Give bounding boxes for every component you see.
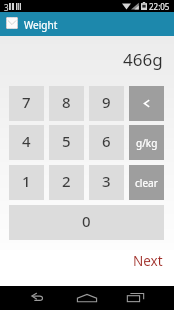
staticText: 8 xyxy=(62,92,71,112)
button[interactable]: Next xyxy=(133,247,174,275)
staticText: Next xyxy=(133,252,163,270)
button[interactable]: 3 xyxy=(89,165,124,200)
staticText: g/kg xyxy=(136,136,158,150)
button[interactable]: 9 xyxy=(89,86,124,121)
staticText: Weight xyxy=(24,18,58,32)
staticText: 3 xyxy=(4,2,9,13)
staticText: 6 xyxy=(102,131,111,151)
button[interactable]: 2 xyxy=(49,165,84,200)
button[interactable]: 4 xyxy=(9,125,44,160)
button[interactable]: g/kg xyxy=(129,125,164,160)
staticText: clear xyxy=(135,176,158,190)
staticText: 4 xyxy=(22,131,31,151)
button[interactable]: Back xyxy=(21,286,53,310)
staticText: 1 xyxy=(22,171,31,191)
button[interactable]: 1 xyxy=(9,165,44,200)
button[interactable]: 8 xyxy=(49,86,84,121)
button[interactable]: clear xyxy=(129,165,164,200)
staticText: 466g xyxy=(123,48,163,71)
button[interactable] xyxy=(129,86,164,121)
button[interactable]: 0 xyxy=(9,205,164,240)
button[interactable]: Recent apps xyxy=(120,286,152,310)
button[interactable]: 6 xyxy=(89,125,124,160)
staticText: 5 xyxy=(62,131,71,151)
staticText: 3 xyxy=(102,171,111,191)
staticText: 7 xyxy=(22,92,31,112)
staticText: 0 xyxy=(82,211,91,231)
button[interactable]: Home xyxy=(71,286,103,310)
staticText: 22:05 xyxy=(149,1,170,12)
staticText: 2 xyxy=(62,171,71,191)
button[interactable]: 5 xyxy=(49,125,84,160)
staticText: 9 xyxy=(102,92,111,112)
button[interactable]: 7 xyxy=(9,86,44,121)
